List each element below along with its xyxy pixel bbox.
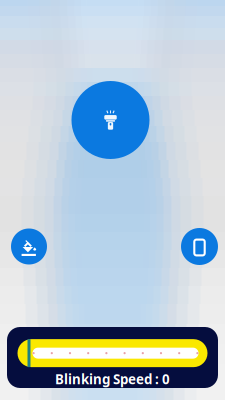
staticText: Blinking Speed : 0 (55, 370, 170, 388)
button[interactable]: Toggle flashlight (71, 81, 149, 159)
button[interactable]: Screen colour (11, 228, 47, 264)
button[interactable]: Screen light (181, 228, 218, 265)
